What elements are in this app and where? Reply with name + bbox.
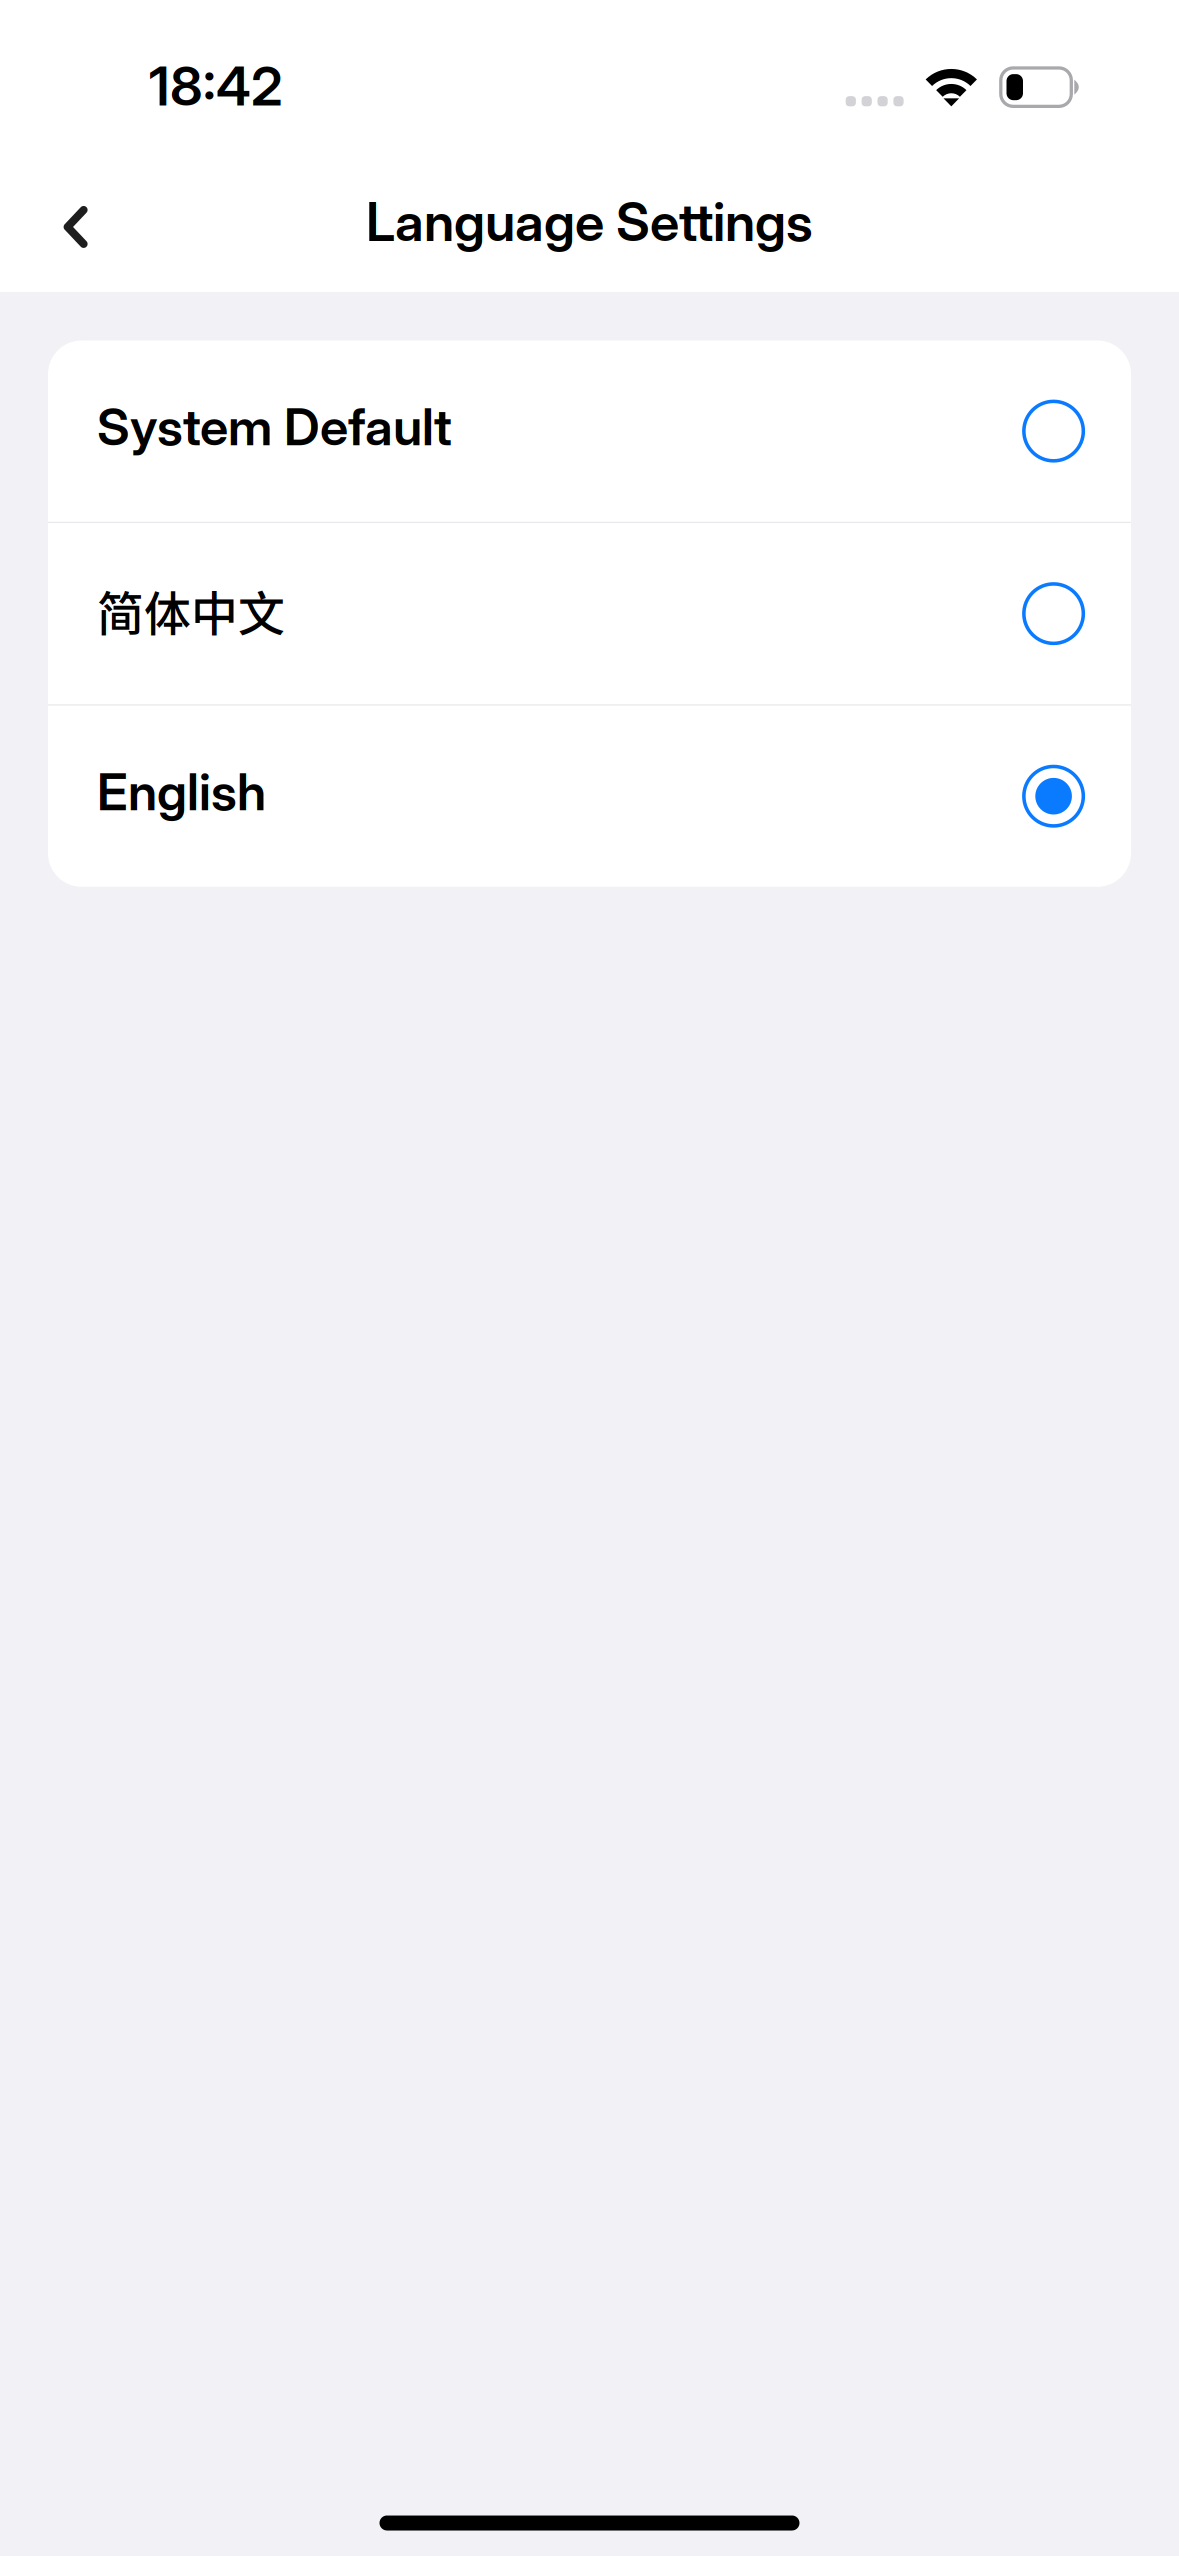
staticText: 18:42 [149, 53, 283, 119]
staticText: Language Settings [366, 190, 813, 254]
button[interactable]: Back [10, 167, 142, 299]
staticText: System Default [97, 396, 452, 457]
staticText: 简体中文 [97, 576, 285, 644]
staticText: English [97, 761, 266, 822]
button[interactable]: English [48, 706, 1131, 887]
button[interactable]: System Default [48, 340, 1131, 522]
button[interactable]: 简体中文 [48, 523, 1131, 704]
